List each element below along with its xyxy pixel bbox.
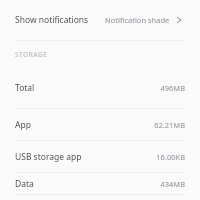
staticText: 496MB [160,83,185,93]
button[interactable]: Show notifications [0,0,200,40]
staticText: Show notifications [15,14,89,26]
button[interactable]: Total [0,67,200,108]
staticText: 434MB [160,179,185,189]
button[interactable]: Data [0,173,200,194]
other: Open notification shade settings [175,15,185,25]
staticText: Total [15,82,35,94]
staticText: Notification shade [105,15,170,25]
button[interactable]: USB storage app [0,141,200,172]
staticText: App [15,119,31,131]
button[interactable]: App [0,109,200,140]
staticText: 62.21MB [154,120,185,130]
staticText: 16.00KB [156,152,185,162]
staticText: Data [15,178,34,190]
staticText: STORAGE [15,50,48,59]
staticText: USB storage app [15,151,82,163]
